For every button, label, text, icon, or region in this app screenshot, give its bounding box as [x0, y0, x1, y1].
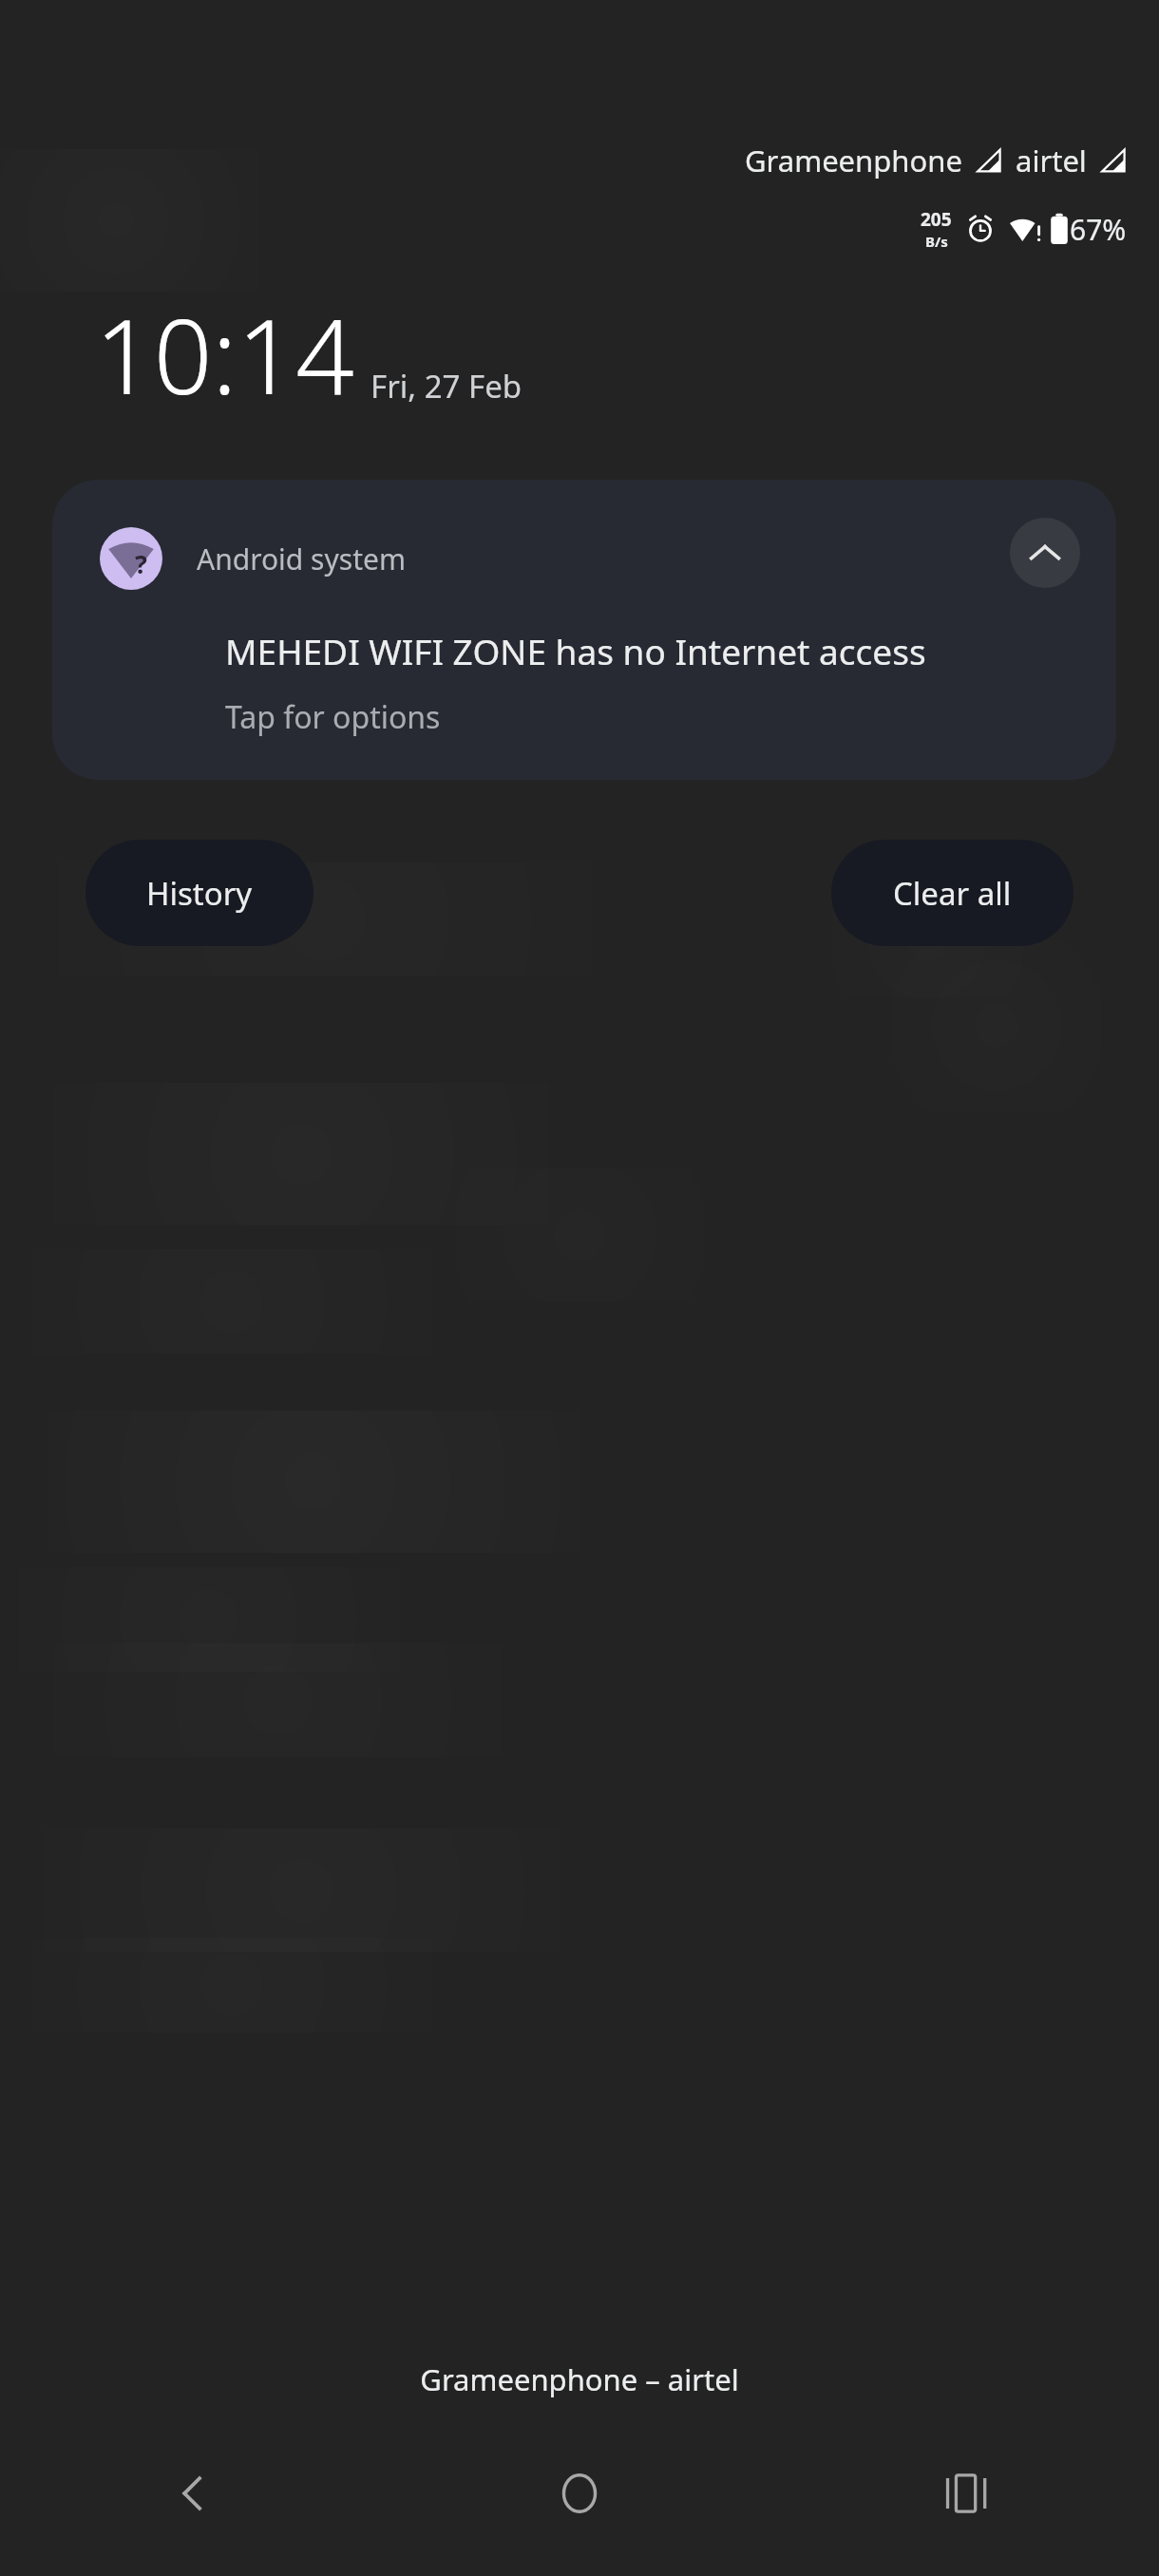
button[interactable]: Collapse notification	[1010, 518, 1080, 588]
button[interactable]: ?	[52, 480, 1116, 780]
staticText: 205	[921, 207, 952, 232]
staticText: Android system	[197, 540, 406, 578]
staticText: MEHEDI WIFI ZONE has no Internet access	[225, 627, 926, 674]
staticText: 10:14	[95, 285, 355, 425]
button[interactable]: Clear all	[831, 840, 1073, 946]
staticText: History	[146, 872, 253, 915]
staticText: Grameenphone	[745, 141, 962, 180]
staticText: Fri, 27 Feb	[370, 365, 522, 407]
staticText: Clear all	[893, 872, 1012, 915]
button[interactable]: Home	[386, 2432, 772, 2555]
staticText: Grameenphone – airtel	[0, 2359, 1159, 2399]
staticText: ?	[135, 546, 147, 581]
button[interactable]: History	[85, 840, 313, 946]
staticText: airtel	[1016, 141, 1087, 180]
staticText: Tap for options	[225, 696, 441, 738]
button[interactable]: Back	[0, 2432, 386, 2555]
staticText: B/s	[925, 232, 948, 251]
button[interactable]: Recent apps	[772, 2432, 1159, 2555]
staticText: 67%	[1070, 210, 1127, 249]
